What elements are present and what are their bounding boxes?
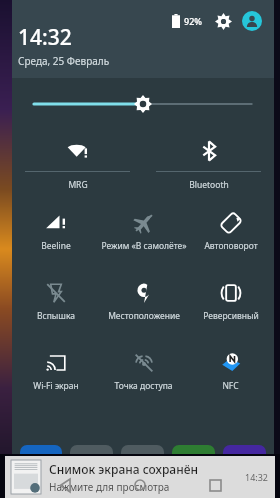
- staticText: Местоположение: [108, 310, 180, 322]
- staticText: Реверсивный: [203, 310, 259, 322]
- button[interactable]: Beeline: [12, 198, 100, 268]
- staticText: 92%: [184, 15, 202, 27]
- staticText: Bluetooth: [189, 179, 229, 191]
- button[interactable]: Реверсивный: [187, 268, 274, 338]
- button[interactable]: Вспышка: [12, 268, 100, 338]
- staticText: Beeline: [41, 240, 71, 252]
- button[interactable]: Режим «В самолёте»: [100, 198, 187, 268]
- staticText: Точка доступа: [114, 380, 173, 392]
- staticText: 14:32: [245, 471, 269, 483]
- staticText: Автоповорот: [204, 240, 258, 252]
- staticText: Снимок экрана сохранён: [49, 461, 198, 477]
- staticText: Вспышка: [37, 310, 75, 322]
- button[interactable]: Wi-Fi экран: [12, 338, 100, 408]
- button[interactable]: NFC: [187, 338, 274, 408]
- button[interactable]: Точка доступа: [100, 338, 187, 408]
- button[interactable]: User account: [240, 9, 264, 33]
- staticText: Среда, 25 Февраль: [18, 54, 110, 68]
- button[interactable]: Автоповорот: [187, 198, 274, 268]
- staticText: 14:32: [18, 23, 72, 52]
- button[interactable]: Recents: [200, 472, 230, 498]
- button[interactable]: MRG: [12, 130, 143, 198]
- button[interactable]: Bluetooth: [143, 130, 274, 198]
- button[interactable]: Back: [50, 472, 80, 498]
- staticText: Нажмите для просмотра: [49, 480, 170, 494]
- button[interactable]: Снимок экрана сохранён: [5, 456, 275, 498]
- button[interactable]: Settings: [212, 10, 234, 32]
- staticText: MRG: [68, 179, 88, 191]
- button[interactable]: Home: [125, 472, 155, 498]
- button[interactable]: Местоположение: [100, 268, 187, 338]
- staticText: NFC: [222, 380, 239, 392]
- staticText: Режим «В самолёте»: [101, 240, 187, 252]
- staticText: Wi-Fi экран: [33, 380, 79, 392]
- button[interactable]: Brightness: [12, 78, 274, 130]
